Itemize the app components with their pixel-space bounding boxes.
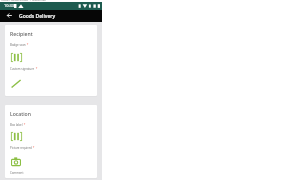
staticText: Goods Delivery xyxy=(19,13,56,20)
button[interactable]: Box label xyxy=(9,131,23,142)
staticText: Picture required xyxy=(10,146,32,150)
staticText: Box label xyxy=(10,123,23,127)
button[interactable]: Back xyxy=(0,10,14,22)
staticText: Custom signature xyxy=(10,67,35,71)
staticText: * xyxy=(26,43,29,47)
button[interactable]: Picture required xyxy=(9,156,23,167)
staticText: Recipient xyxy=(10,31,33,38)
staticText: 10:33 xyxy=(4,3,14,8)
staticText: * xyxy=(23,123,26,127)
button[interactable]: Badge scan xyxy=(9,52,23,63)
button[interactable]: Custom signature xyxy=(9,78,23,89)
staticText: Location xyxy=(10,111,31,118)
staticText: * xyxy=(35,67,38,71)
staticText: Comment xyxy=(10,171,24,175)
staticText: Goods Delivery screen | mobile app xyxy=(1,0,46,1)
staticText: * xyxy=(32,146,35,150)
staticText: Badge scan xyxy=(10,43,26,47)
